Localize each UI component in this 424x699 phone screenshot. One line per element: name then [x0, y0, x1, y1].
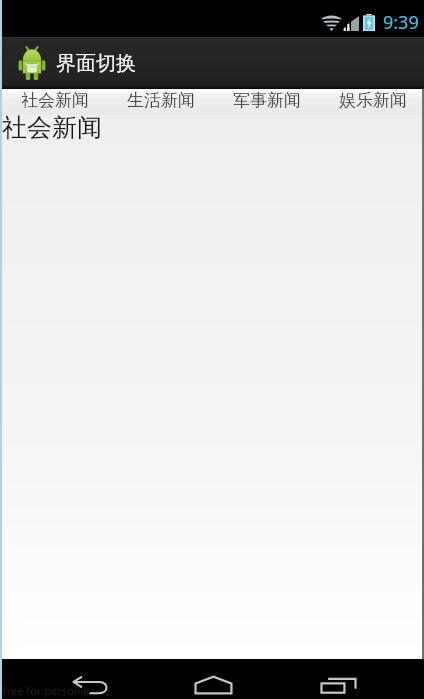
button[interactable]: Home	[183, 659, 243, 699]
staticText: 娱乐新闻	[339, 90, 407, 111]
staticText: 军事新闻	[233, 90, 301, 111]
staticText: free for personal use	[3, 683, 111, 698]
button[interactable]: 娱乐新闻	[318, 89, 424, 115]
staticText: 生活新闻	[127, 90, 195, 111]
staticText: 社会新闻	[21, 90, 89, 111]
staticText: 9:39	[383, 10, 419, 35]
button[interactable]: Back	[60, 659, 120, 699]
button[interactable]: 生活新闻	[106, 89, 212, 115]
button[interactable]: 社会新闻	[0, 89, 106, 115]
button[interactable]: Recent apps	[308, 659, 368, 699]
staticText: 社会新闻	[2, 112, 102, 143]
button[interactable]: 军事新闻	[212, 89, 318, 115]
staticText: 界面切换	[56, 51, 136, 76]
